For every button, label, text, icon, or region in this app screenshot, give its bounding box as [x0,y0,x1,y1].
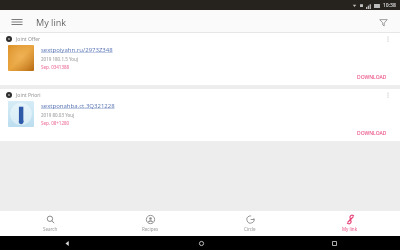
staticText: sextponahba.ct.3Q321228 [41,102,115,110]
staticText: My link [36,16,67,28]
button[interactable]: Filter [374,13,392,31]
staticText: Search [43,226,58,232]
staticText: sextpoiyahn.ru/2973Z348 [41,46,113,54]
button[interactable]: DOWNLOAD [354,73,390,82]
button[interactable]: More options [382,33,394,45]
button[interactable]: Joint Priori [0,89,400,141]
staticText: Circle [244,226,256,232]
button[interactable]: My link [300,211,400,236]
staticText: Sep. 08+1280 [41,120,70,126]
button[interactable]: Recent apps [327,236,341,250]
button[interactable]: Search [0,211,100,236]
staticText: 2019 180.1.5 Youj [41,56,78,62]
button[interactable]: Recipes [100,211,200,236]
button[interactable]: More options [382,89,394,101]
staticText: Recipes [142,226,159,232]
staticText: DOWNLOAD [357,74,387,81]
staticText: My link [342,226,358,232]
button[interactable]: Circle [200,211,300,236]
staticText: DOWNLOAD [357,130,387,137]
staticText: Joint Offer [16,36,41,43]
button[interactable]: Open navigation menu [8,13,26,31]
button[interactable]: Home [194,236,208,250]
staticText: Sep. 0341388 [41,64,70,70]
button[interactable]: Back [60,236,74,250]
staticText: 2019 80.03 Youj [41,112,75,118]
button[interactable]: Joint Offer [0,33,400,85]
staticText: Joint Priori [16,92,41,99]
staticText: 10:38 [383,2,396,9]
button[interactable]: DOWNLOAD [354,129,390,138]
